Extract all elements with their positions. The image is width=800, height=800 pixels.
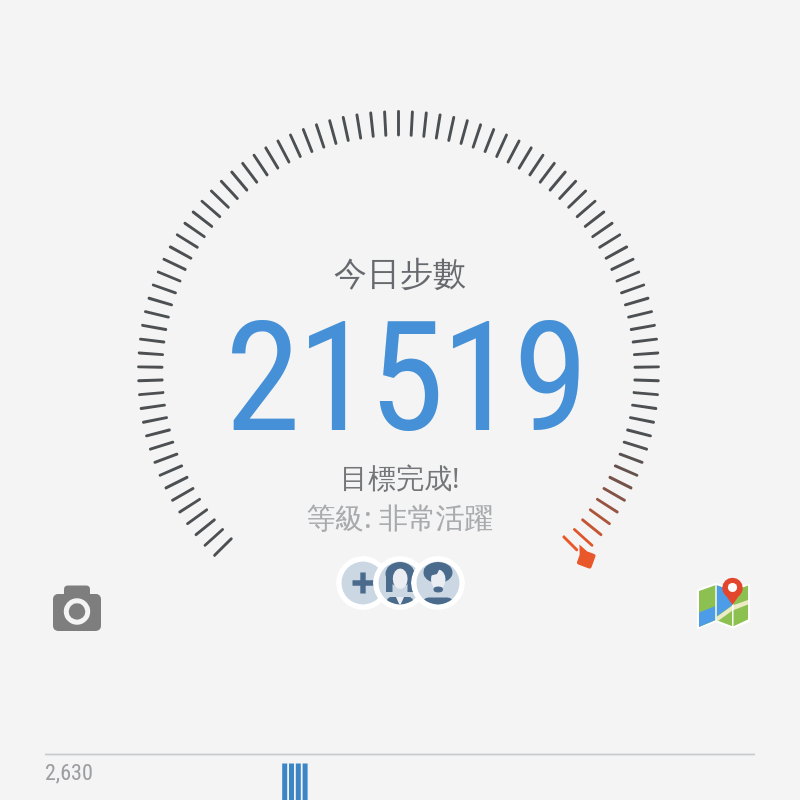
staticText: 2,630 (45, 760, 93, 786)
staticText: 21519 (225, 288, 586, 467)
button[interactable] (336, 556, 390, 610)
staticText: 等級: 非常活躍 (307, 498, 494, 537)
staticText: 目標完成! (340, 458, 460, 496)
button[interactable] (45, 578, 109, 638)
button[interactable] (373, 556, 427, 610)
staticText: 今日步數 (334, 253, 466, 295)
button[interactable] (688, 572, 760, 638)
button[interactable] (411, 556, 465, 610)
